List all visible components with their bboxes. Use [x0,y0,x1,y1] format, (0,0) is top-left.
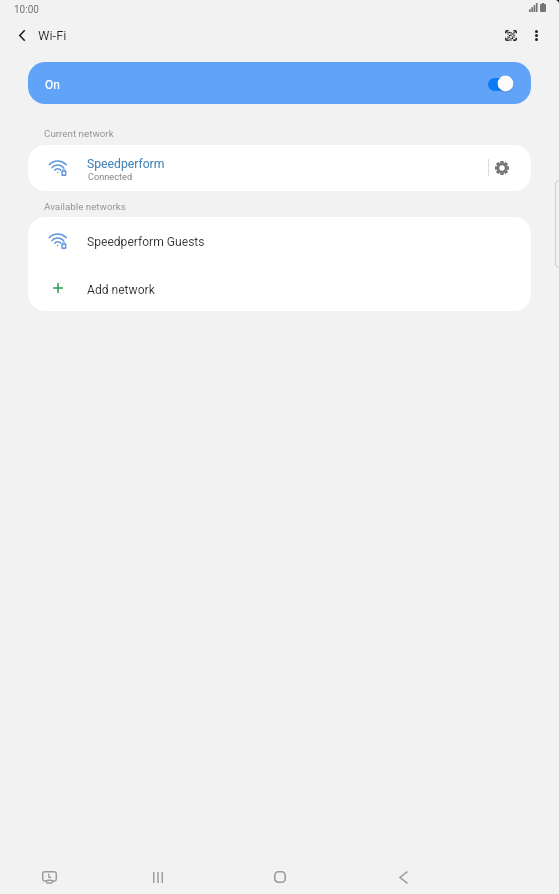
button[interactable]: On [28,62,531,104]
button[interactable]: Recent apps [134,853,182,894]
button[interactable]: Scan QR code [489,13,533,57]
button[interactable]: Home [256,853,304,894]
staticText: 10:00 [14,4,39,16]
button[interactable]: Add network [28,264,531,311]
staticText: On [45,78,60,92]
button[interactable]: Screenshot [25,853,73,894]
button[interactable]: Back [379,853,427,894]
button[interactable]: More options [514,13,558,57]
button[interactable]: Wi-Fi on/off [486,73,516,93]
staticText: Available networks [44,201,126,212]
staticText: Speedperform Guests [87,235,205,249]
staticText: Connected [88,171,133,182]
button[interactable]: Speedperform Guests [28,217,531,264]
button[interactable]: Network settings [480,146,524,190]
staticText: Current network [44,128,114,139]
button[interactable]: Navigate up [0,13,44,57]
staticText: Add network [87,283,155,297]
staticText: Speedperform [87,157,165,171]
staticText: Wi-Fi [38,28,67,43]
button[interactable]: Speedperform [28,145,531,191]
